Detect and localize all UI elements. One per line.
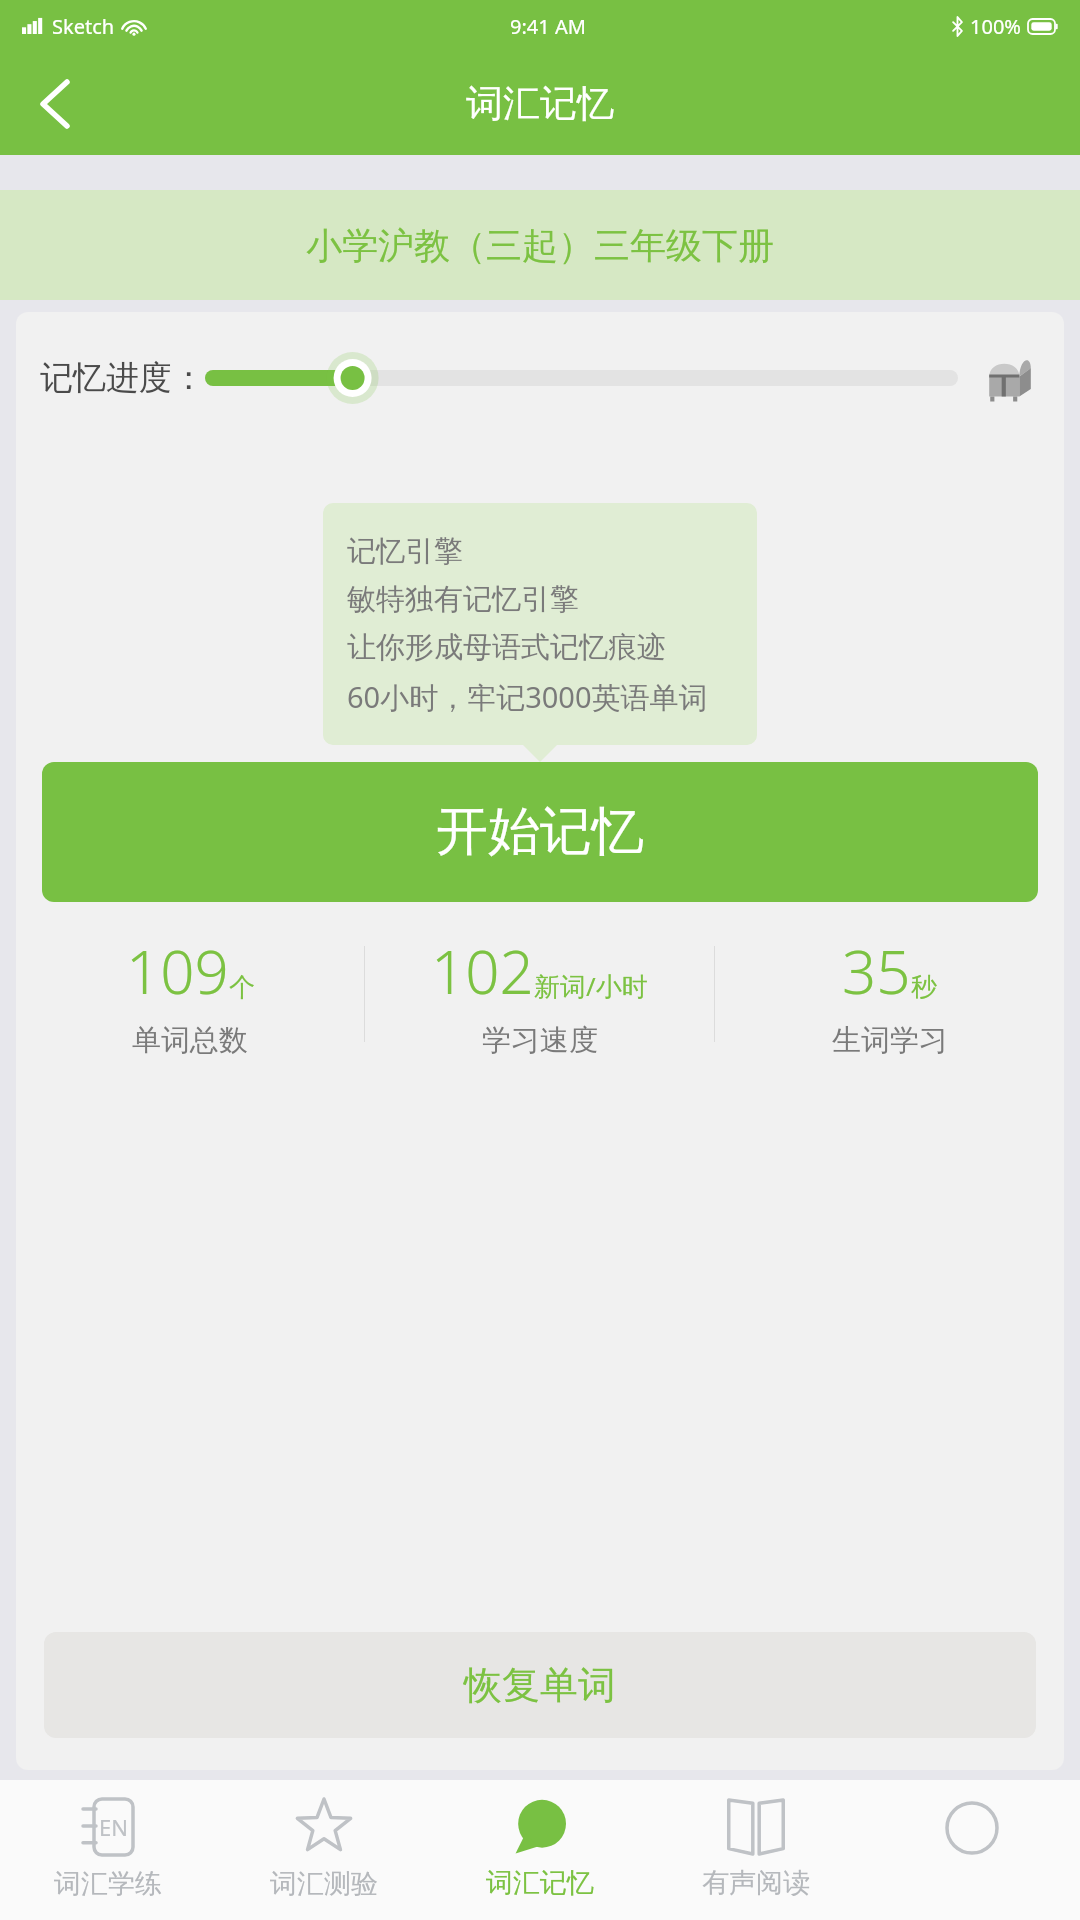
- staticText: 102: [431, 930, 534, 1012]
- button[interactable]: 恢复单词: [44, 1632, 1036, 1738]
- other: 词汇学练: [83, 1799, 133, 1855]
- staticText: 记忆引擎: [347, 533, 463, 570]
- other: 词汇测验: [296, 1799, 352, 1855]
- staticText: 35: [842, 930, 911, 1012]
- staticText: 开始记忆: [436, 799, 644, 865]
- staticText: 生词学习: [832, 1022, 948, 1059]
- staticText: 个: [229, 971, 255, 1004]
- staticText: 敏特独有记忆引擎: [347, 581, 579, 618]
- staticText: 学习速度: [482, 1022, 598, 1059]
- other: 词汇记忆: [514, 1800, 566, 1854]
- staticText: 100%: [970, 13, 1021, 40]
- button[interactable]: 词汇测验: [216, 1780, 432, 1920]
- staticText: 有声阅读: [702, 1866, 810, 1900]
- staticText: EN: [99, 1812, 128, 1842]
- staticText: 记忆进度：: [40, 357, 205, 399]
- staticText: 词汇学练: [54, 1867, 162, 1901]
- other: 我的: [945, 1801, 999, 1855]
- other: 有声阅读: [727, 1800, 785, 1854]
- button[interactable]: 词汇记忆: [432, 1780, 648, 1920]
- staticText: 9:41 AM: [510, 13, 586, 40]
- staticText: 单词总数: [132, 1022, 248, 1059]
- button[interactable]: 109: [16, 930, 364, 1059]
- button[interactable]: Treasure chest: [980, 348, 1040, 408]
- staticText: 让你形成母语式记忆痕迹: [347, 629, 666, 666]
- button[interactable]: 102: [365, 930, 714, 1059]
- staticText: 词汇记忆: [486, 1866, 594, 1900]
- staticText: 60小时，牢记3000英语单词: [347, 677, 708, 717]
- staticText: 新词/小时: [534, 968, 648, 1004]
- staticText: 恢复单词: [464, 1661, 616, 1709]
- button[interactable]: 我的: [864, 1780, 1080, 1920]
- staticText: 词汇测验: [270, 1867, 378, 1901]
- staticText: Sketch: [52, 13, 115, 40]
- staticText: 词汇记忆: [466, 80, 614, 127]
- button[interactable]: Back: [22, 71, 88, 137]
- button[interactable]: 词汇学练: [0, 1780, 216, 1920]
- button[interactable]: 35: [715, 930, 1064, 1059]
- staticText: 秒: [911, 971, 937, 1004]
- button[interactable]: 有声阅读: [648, 1780, 864, 1920]
- staticText: 小学沪教（三起）三年级下册: [306, 223, 774, 268]
- staticText: 109: [126, 930, 229, 1012]
- button[interactable]: 开始记忆: [42, 762, 1038, 902]
